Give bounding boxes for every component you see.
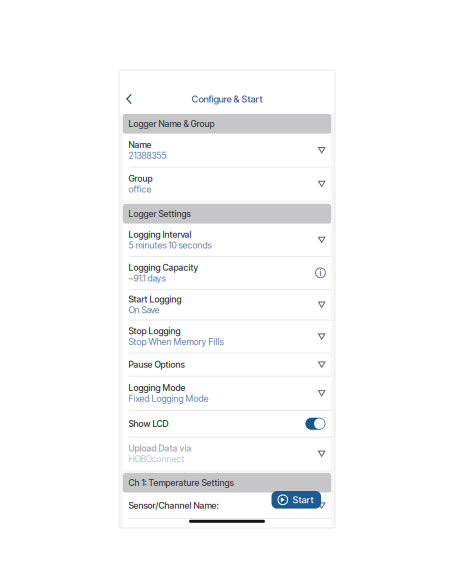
button[interactable]: Back	[121, 87, 137, 110]
staticText: Logger Name & Group	[129, 118, 215, 129]
button[interactable]: Upload Data via	[123, 438, 331, 470]
staticText: Logger Settings	[129, 208, 191, 219]
staticText: Group	[129, 173, 153, 184]
button[interactable]: Show LCD	[123, 411, 331, 437]
button[interactable]: Sensor/Channel Name:	[123, 493, 331, 518]
staticText: office	[129, 184, 152, 195]
staticText: Configure & Start	[191, 93, 262, 105]
button[interactable]: Logging Interval	[123, 224, 331, 256]
button[interactable]: Group	[123, 167, 331, 200]
staticText: Stop When Memory Fills	[129, 336, 224, 347]
staticText: i	[319, 267, 321, 278]
staticText: On Save	[129, 305, 160, 315]
staticText: Logging Capacity	[129, 262, 199, 273]
staticText: Sensor/Channel Name:	[129, 500, 219, 511]
staticText: Stop Logging	[129, 326, 181, 336]
staticText: Upload Data via	[129, 443, 192, 454]
staticText: 5 minutes 10 seconds	[129, 240, 212, 251]
staticText: 21388355	[129, 150, 167, 161]
staticText: Start	[293, 494, 314, 506]
button[interactable]: Pause Options	[123, 353, 331, 376]
button[interactable]: Logging Mode	[123, 376, 331, 410]
button[interactable]: Stop Logging	[123, 320, 331, 353]
staticText: Logging Mode	[129, 382, 186, 393]
button[interactable]: Start Logging	[123, 290, 331, 320]
staticText: Show LCD	[129, 418, 169, 429]
staticText: HOBOconnect	[129, 454, 185, 464]
staticText: ~91.1 days	[129, 273, 166, 284]
staticText: Fixed Logging Mode	[129, 393, 209, 404]
button[interactable]: Logging Capacity	[123, 257, 331, 289]
staticText: Ch 1: Temperature Settings	[129, 477, 234, 488]
staticText: Name	[129, 139, 152, 150]
staticText: Start Logging	[129, 294, 182, 305]
button[interactable]: Start	[271, 491, 321, 509]
button[interactable]: Name	[123, 134, 331, 167]
staticText: Pause Options	[129, 359, 185, 370]
staticText: Logging Interval	[129, 229, 192, 240]
